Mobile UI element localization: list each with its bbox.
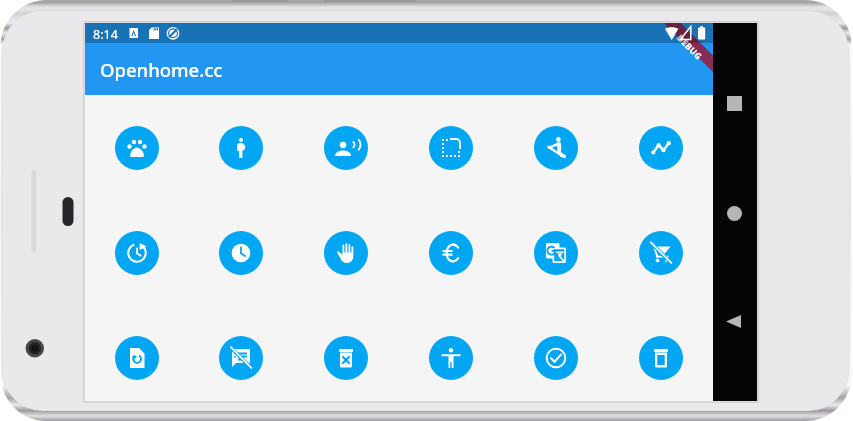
button[interactable]: checkcircle — [534, 336, 578, 380]
staticText: DEBUG — [674, 32, 705, 63]
button[interactable]: deleteoutline — [639, 336, 683, 380]
button[interactable]: accessibility — [429, 336, 473, 380]
button[interactable]: watchlater — [219, 231, 263, 275]
button[interactable]: pets — [115, 126, 159, 170]
staticText: 8:14 — [93, 26, 118, 43]
button[interactable]: Back — [726, 314, 741, 329]
staticText: Openhome.cc — [100, 57, 223, 82]
button[interactable]: update — [115, 231, 159, 275]
button[interactable]: notesoff — [219, 336, 263, 380]
button[interactable]: euro — [429, 231, 473, 275]
button[interactable]: removecart — [639, 231, 683, 275]
button[interactable]: timeline — [639, 126, 683, 170]
button[interactable]: pregnant — [219, 126, 263, 170]
button[interactable]: Home — [727, 206, 742, 221]
button[interactable]: recordvoice — [324, 126, 368, 170]
button[interactable]: deleteforever — [324, 336, 368, 380]
button[interactable]: restorepage — [115, 336, 159, 380]
button[interactable]: rowing — [534, 126, 578, 170]
button[interactable]: pantool — [324, 231, 368, 275]
button[interactable]: roundedcorner — [429, 126, 473, 170]
button[interactable]: gtranslate — [534, 231, 578, 275]
